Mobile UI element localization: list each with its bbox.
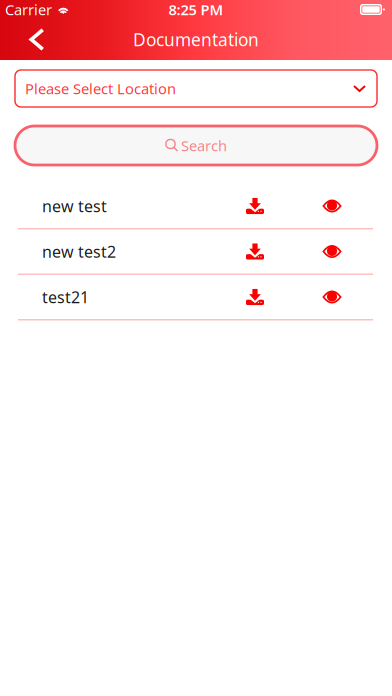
button[interactable]: View new test [305, 184, 359, 228]
staticText: Please Select Location [25, 79, 176, 98]
staticText: new test2 [42, 241, 116, 262]
staticText: Documentation [133, 28, 259, 51]
button[interactable]: View new test2 [305, 229, 359, 273]
button[interactable]: Download new test [228, 184, 282, 228]
button[interactable]: Please Select Location [15, 70, 377, 107]
staticText: new test [42, 195, 107, 217]
staticText: Carrier [5, 0, 52, 19]
staticText: 8:25 PM [168, 0, 223, 19]
button[interactable]: Download new test2 [228, 229, 282, 273]
button[interactable]: Download test21 [228, 275, 282, 319]
button[interactable]: Back [15, 19, 59, 60]
button[interactable]: Search [15, 126, 377, 165]
button[interactable]: View test21 [305, 275, 359, 319]
staticText: Search [181, 136, 227, 155]
staticText: test21 [42, 286, 89, 308]
